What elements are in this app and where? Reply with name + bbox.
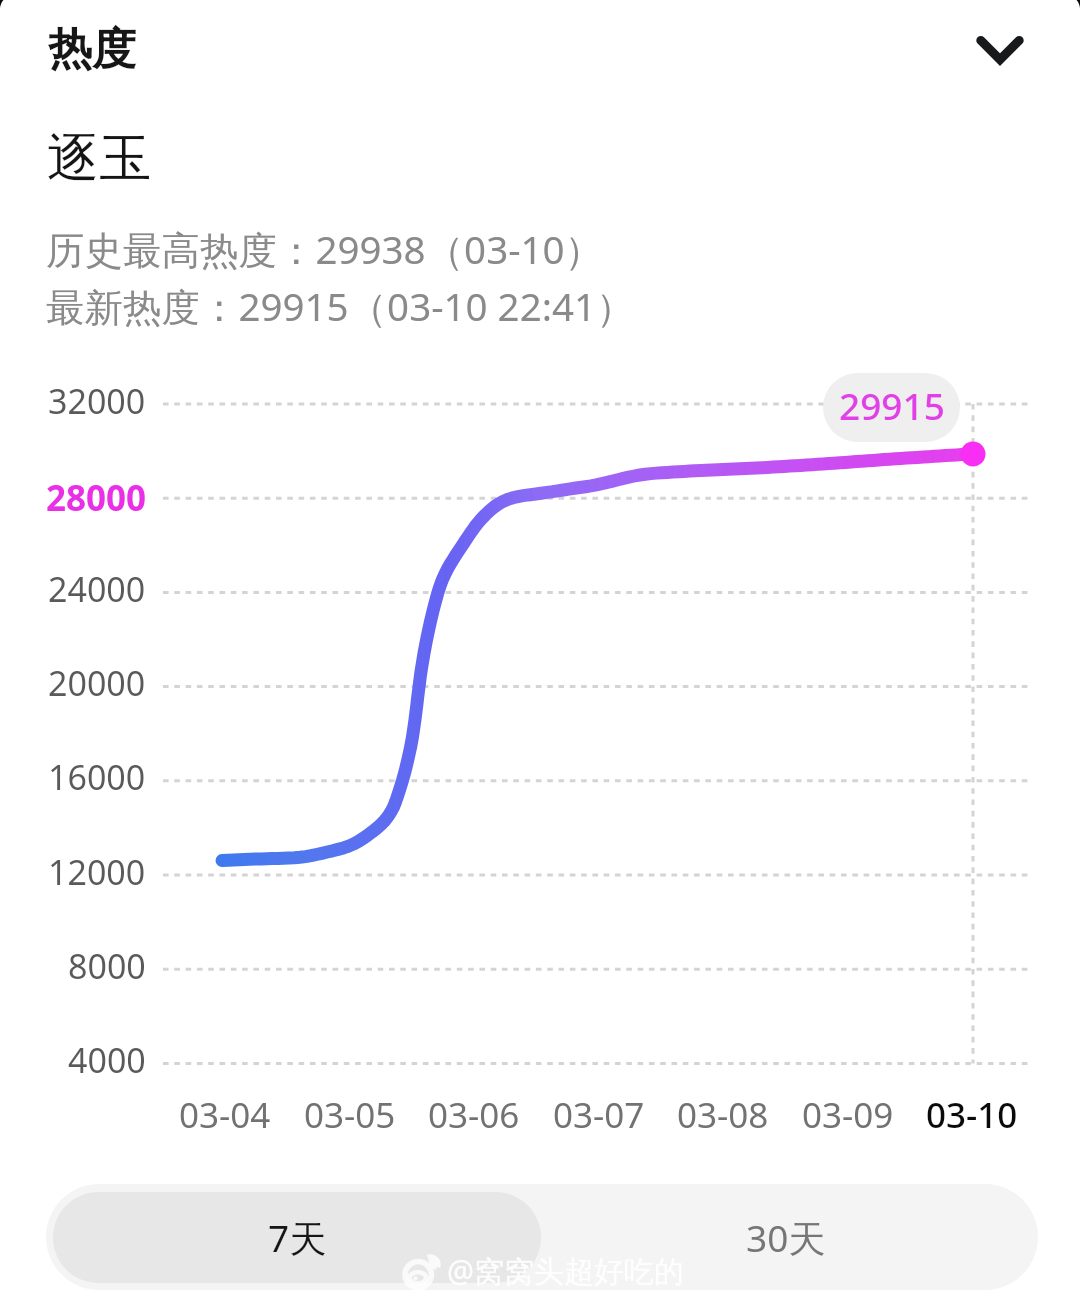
staticText: 8000 (68, 943, 146, 989)
staticText: 03-05 (304, 1091, 396, 1139)
staticText: 03-07 (553, 1091, 645, 1139)
button[interactable]: Collapse (954, 1, 1046, 93)
staticText: 12000 (48, 849, 146, 895)
staticText: 32000 (48, 378, 146, 424)
staticText: 4000 (68, 1037, 146, 1083)
staticText: 逐玉 (47, 126, 151, 192)
staticText: 16000 (48, 754, 146, 800)
staticText: 30天 (746, 1212, 826, 1263)
staticText: 最新热度：29915（03‐10 22:41） (46, 280, 635, 333)
button[interactable]: 7天 (53, 1192, 541, 1283)
button[interactable]: 30天 (542, 1192, 1030, 1283)
staticText: 03-10 (926, 1091, 1018, 1139)
staticText: 03-08 (677, 1091, 769, 1139)
staticText: 历史最高热度：29938（03‐10） (46, 223, 604, 276)
staticText: 03-09 (802, 1091, 894, 1139)
staticText: 03-04 (179, 1091, 271, 1139)
staticText: 7天 (268, 1212, 327, 1263)
staticText: 28000 (46, 474, 147, 522)
staticText: 03-06 (428, 1091, 520, 1139)
staticText: 热度 (48, 22, 136, 77)
staticText: @窝窝头超好吃的 (447, 1250, 684, 1291)
staticText: 24000 (48, 566, 146, 612)
staticText: 20000 (48, 660, 146, 706)
staticText: 29915 (839, 380, 945, 430)
